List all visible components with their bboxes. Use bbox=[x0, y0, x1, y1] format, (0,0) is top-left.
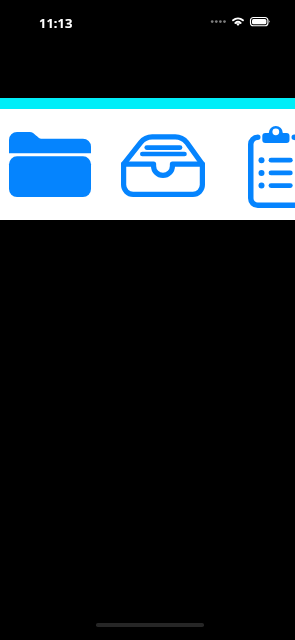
button[interactable]: Inbox bbox=[121, 134, 205, 197]
button[interactable]: Clipboard bbox=[248, 126, 295, 208]
staticText: 11:13 bbox=[39, 14, 73, 32]
button[interactable]: Folder bbox=[9, 132, 91, 197]
